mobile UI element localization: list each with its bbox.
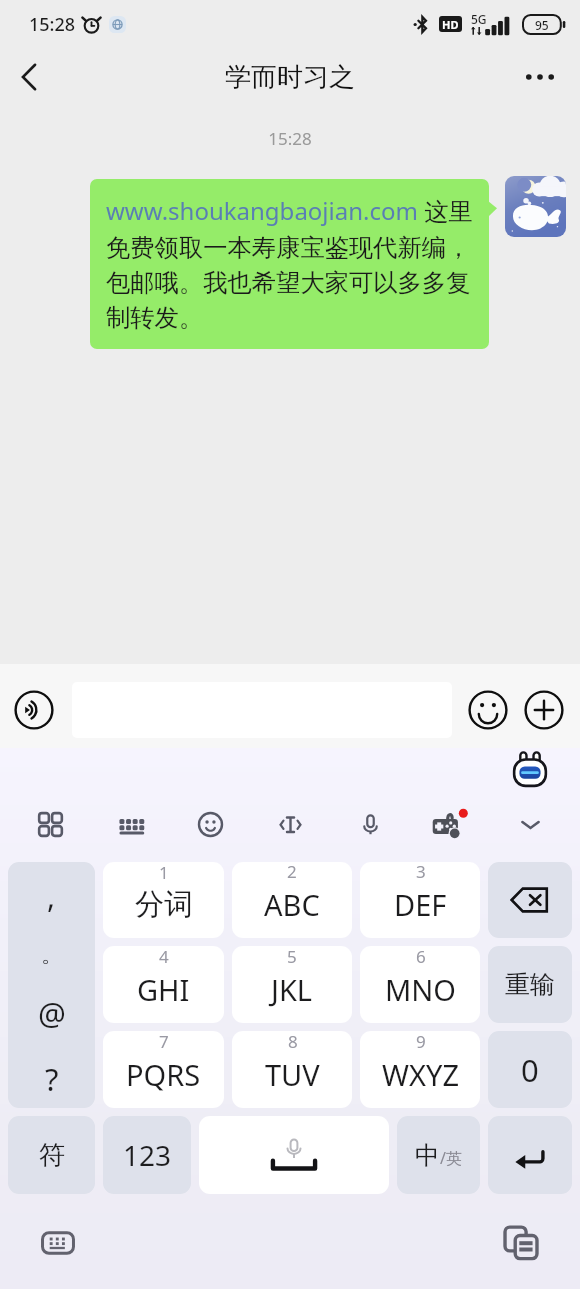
staticText: WXYZ (382, 1055, 459, 1094)
staticText: MNO (385, 970, 456, 1009)
button[interactable]: 0 (488, 1031, 572, 1108)
button[interactable]: www.shoukangbaojian.com (90, 179, 489, 349)
button[interactable]: More options (516, 53, 564, 101)
button[interactable]: Back (4, 52, 54, 102)
button[interactable]: More (518, 684, 570, 736)
staticText: 4 (159, 946, 169, 968)
staticText: 包邮哦。我也希望大家可以多多复 (106, 268, 471, 299)
staticText: ? (45, 1058, 59, 1100)
staticText: 免费领取一本寿康宝鉴现代新编， (106, 233, 471, 264)
staticText: /英 (440, 1147, 462, 1169)
button[interactable]: 2 (232, 862, 352, 938)
staticText: www.shoukangbaojian.com (106, 194, 418, 227)
button[interactable]: 4 (103, 946, 224, 1023)
button[interactable]: Clipboard (504, 1225, 538, 1260)
button[interactable]: Voice (348, 802, 392, 846)
button[interactable]: Hide keyboard (508, 802, 552, 846)
button[interactable]: 符 (8, 1116, 95, 1194)
staticText: 5 (287, 946, 297, 968)
button[interactable]: Apps (28, 802, 72, 846)
button[interactable]: 重输 (488, 946, 572, 1023)
button[interactable]: Backspace (488, 862, 572, 938)
button[interactable]: 123 (103, 1116, 191, 1194)
staticText: 中 (415, 1140, 440, 1171)
button[interactable]: 3 (360, 862, 480, 938)
staticText: 7 (159, 1031, 169, 1053)
button[interactable]: 6 (360, 946, 480, 1023)
staticText: 2 (287, 862, 297, 883)
staticText: 9 (416, 1031, 426, 1053)
button[interactable]: symbols (8, 862, 95, 1108)
staticText: 重输 (505, 969, 555, 1000)
staticText: PQRS (126, 1055, 201, 1094)
button[interactable]: 中 (397, 1116, 480, 1194)
staticText: HD (442, 17, 459, 32)
staticText: 15:28 (29, 12, 76, 37)
staticText: 3 (416, 862, 426, 883)
button[interactable]: Games (428, 802, 472, 846)
staticText: JKL (271, 970, 313, 1009)
button[interactable]: 8 (232, 1031, 352, 1108)
staticText: 6 (416, 946, 426, 968)
button[interactable]: Emoji (462, 684, 514, 736)
button[interactable]: Switch keyboard (40, 1227, 76, 1259)
button[interactable]: Space (199, 1116, 389, 1194)
button[interactable]: Assistant (508, 748, 552, 792)
staticText: 95 (535, 17, 549, 33)
staticText: 分词 (135, 886, 193, 923)
button[interactable]: 9 (360, 1031, 480, 1108)
staticText: 1 (159, 862, 169, 884)
staticText: 5G (471, 11, 487, 27)
button[interactable]: Enter (488, 1116, 572, 1194)
button[interactable]: Keyboard layout (108, 802, 152, 846)
button[interactable]: Edit cursor (268, 802, 312, 846)
staticText: , (47, 876, 56, 917)
button[interactable]: Emoji (188, 802, 232, 846)
staticText: TUV (265, 1055, 320, 1094)
button[interactable]: Avatar (505, 176, 566, 237)
staticText: 。 (41, 941, 63, 969)
staticText: 15:28 (0, 127, 580, 150)
staticText: 这里 (418, 194, 473, 227)
staticText: ABC (264, 885, 320, 924)
button[interactable]: 1 (103, 862, 224, 938)
staticText: @ (38, 992, 66, 1034)
staticText: 0 (521, 1049, 539, 1091)
staticText: 8 (288, 1031, 298, 1053)
staticText: 制转发。 (106, 303, 204, 334)
button[interactable]: 5 (232, 946, 352, 1023)
staticText: 学而时习之 (225, 61, 355, 94)
staticText: 123 (123, 1136, 172, 1174)
staticText: 符 (39, 1139, 65, 1172)
staticText: DEF (394, 885, 447, 924)
button[interactable]: 7 (103, 1031, 224, 1108)
staticText: GHI (137, 970, 190, 1009)
button[interactable]: Voice input (8, 684, 60, 736)
